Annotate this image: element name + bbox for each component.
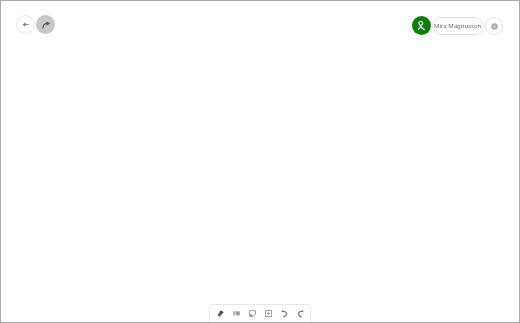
button[interactable]: Insert: [260, 304, 276, 323]
button[interactable]: Sticky note: [244, 304, 260, 323]
button[interactable]: Mira Magnusson: [432, 17, 484, 35]
button[interactable]: Image: [228, 304, 244, 323]
button[interactable]: Settings: [485, 17, 503, 35]
button[interactable]: Share: [36, 15, 55, 34]
staticText: Mira Magnusson: [434, 22, 482, 30]
button[interactable]: Redo: [292, 304, 308, 323]
button[interactable]: Back: [16, 15, 35, 34]
button[interactable]: Account: [412, 16, 431, 35]
button[interactable]: Undo: [276, 304, 292, 323]
button[interactable]: Pen: [212, 304, 228, 323]
